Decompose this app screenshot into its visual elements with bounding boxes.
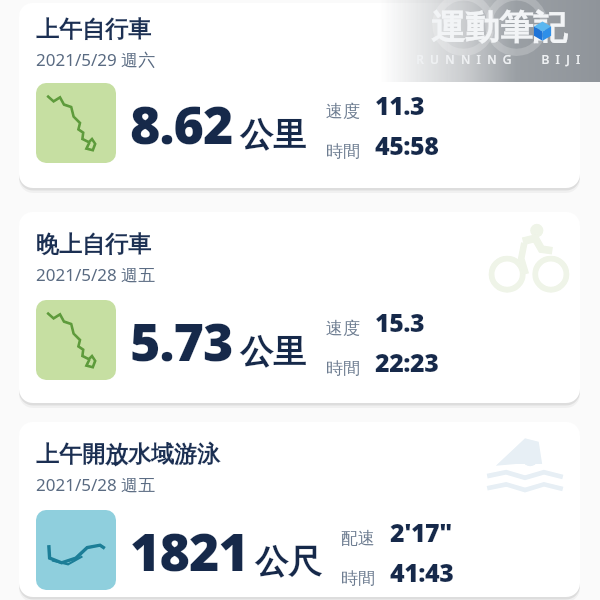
staticText: 公里 (240, 114, 306, 156)
staticText: 速度 (326, 101, 360, 122)
staticText: 速度 (326, 318, 360, 339)
staticText: 5.73 (130, 305, 233, 376)
staticText: 8.62 (130, 88, 233, 159)
staticText: 15.3 (375, 305, 425, 339)
staticText: 上午開放水域游泳 (36, 440, 220, 469)
staticText: 22:23 (375, 345, 439, 379)
staticText: 配速 (341, 528, 375, 549)
staticText: 時間 (326, 141, 360, 162)
staticText: 11.3 (375, 88, 425, 122)
staticText: 45:58 (375, 128, 439, 162)
button[interactable]: 上午開放水域游泳 (19, 422, 580, 597)
staticText: 運動筆 (431, 6, 533, 49)
staticText: 晚上自行車 (36, 230, 151, 259)
staticText: 時間 (326, 358, 360, 379)
staticText: 時間 (341, 568, 375, 589)
button[interactable]: 晚上自行車 (19, 212, 580, 403)
staticText: 1821 (130, 515, 248, 586)
button[interactable]: Route map (36, 300, 116, 380)
staticText: 2'17" (390, 515, 452, 549)
staticText: 2021/5/29 週六 (36, 48, 156, 71)
staticText: R U N N I N G B I J I (416, 51, 582, 67)
staticText: 2021/5/28 週五 (36, 263, 156, 286)
button[interactable]: 上午自行車 (19, 3, 580, 188)
staticText: 41:43 (390, 555, 454, 589)
staticText: 記 (533, 6, 567, 49)
button[interactable]: Route map (36, 83, 116, 163)
staticText: 公尺 (255, 541, 321, 583)
staticText: 2021/5/28 週五 (36, 473, 156, 496)
staticText: 上午自行車 (36, 15, 151, 44)
staticText: 公里 (240, 331, 306, 373)
button[interactable]: Route map (36, 510, 116, 590)
